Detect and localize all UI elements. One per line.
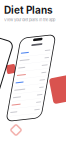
- staticText: Diet Plans: [4, 4, 53, 16]
- staticText: View your diet plans in the app: [4, 18, 55, 22]
